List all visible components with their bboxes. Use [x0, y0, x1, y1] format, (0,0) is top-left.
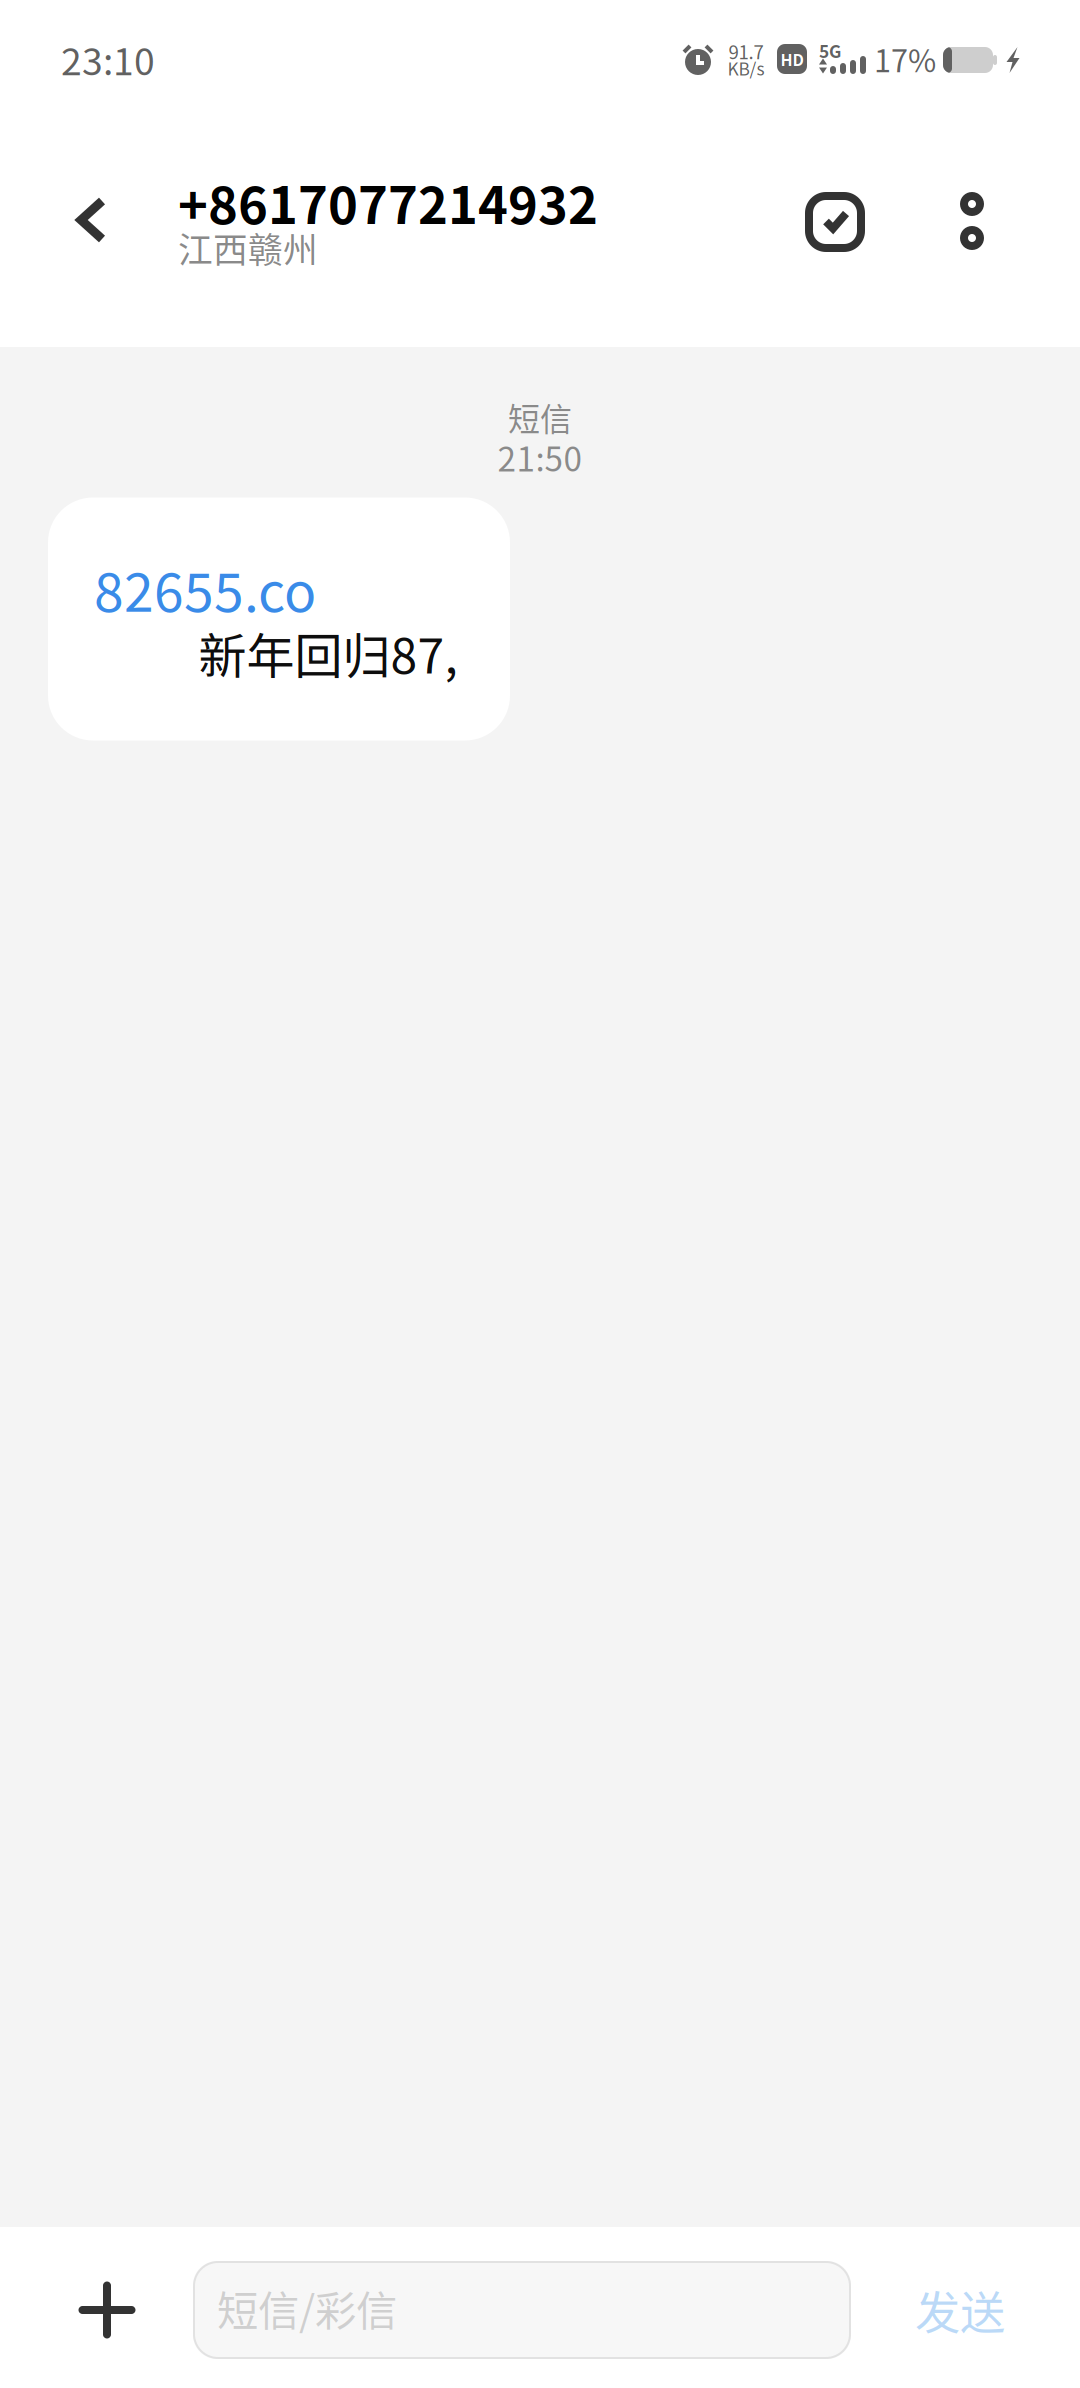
staticText: 91.7	[728, 37, 763, 64]
button[interactable]: Back	[37, 155, 147, 285]
staticText: 21:50	[497, 433, 582, 481]
button[interactable]: 发送	[885, 2240, 1035, 2380]
staticText: 23:10	[61, 32, 155, 86]
staticText: 江西赣州	[178, 223, 318, 273]
staticText: KB/s	[727, 55, 764, 81]
button[interactable]: More options	[922, 156, 1022, 286]
staticText: 短信	[508, 394, 572, 440]
button[interactable]: 短信/彩信	[193, 2261, 851, 2359]
staticText: +8617077214932	[178, 165, 598, 239]
staticText: HD	[780, 47, 803, 71]
staticText: 82655.co	[94, 550, 316, 627]
staticText: 新年回归87,	[198, 618, 457, 687]
staticText: 5G	[819, 38, 841, 63]
staticText: 17%	[874, 37, 936, 81]
button[interactable]: Select messages	[777, 157, 893, 287]
staticText: 短信/彩信	[217, 2278, 397, 2338]
button[interactable]: Add attachment	[37, 2240, 177, 2380]
staticText: 发送	[915, 2277, 1005, 2343]
